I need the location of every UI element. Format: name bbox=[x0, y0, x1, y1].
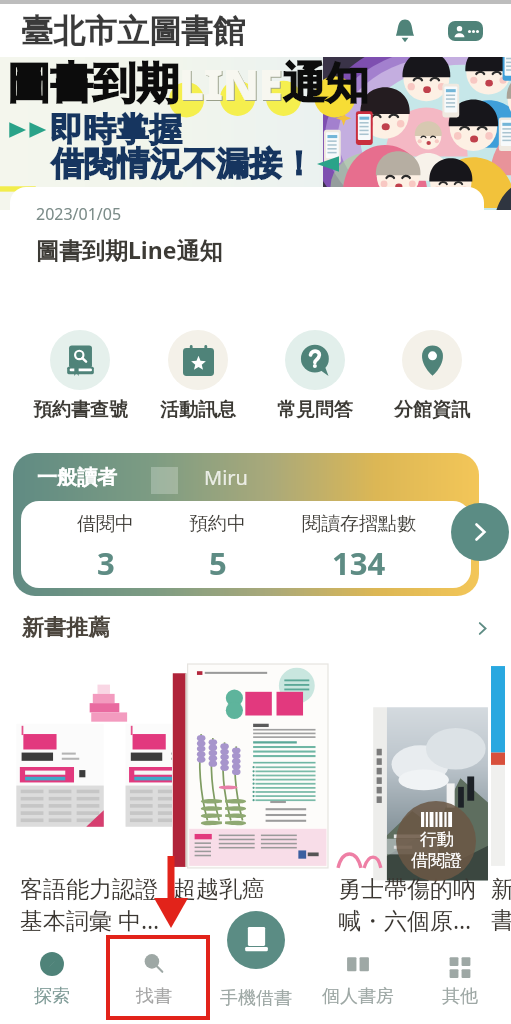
button[interactable]: 2023/01/05 bbox=[10, 187, 484, 309]
button[interactable]: 借閱中 bbox=[77, 507, 134, 588]
staticText: 臺北市立圖書館 bbox=[21, 11, 245, 51]
button[interactable]: 找書 bbox=[103, 951, 205, 1024]
staticText: 5 bbox=[209, 542, 227, 584]
staticText: 新書 bbox=[491, 875, 511, 935]
button[interactable]: 一般讀者 bbox=[13, 453, 479, 596]
staticText: 預約中 bbox=[189, 512, 246, 536]
button[interactable]: 個人書房 bbox=[307, 951, 409, 1024]
staticText: 個人書房 bbox=[322, 985, 394, 1008]
button[interactable]: 常見問答 bbox=[256, 330, 373, 422]
button[interactable]: 客語能力認證基本詞彙 中… bbox=[2, 664, 165, 936]
button[interactable]: 預約書查號 bbox=[21, 330, 139, 422]
staticText: 找書 bbox=[136, 985, 172, 1008]
button[interactable]: 閱讀存摺點數 bbox=[302, 507, 416, 588]
staticText: 2023/01/05 bbox=[36, 203, 122, 225]
staticText: LINE bbox=[180, 55, 284, 114]
button[interactable]: 預約中 bbox=[189, 507, 246, 588]
button[interactable]: 分館資訊 bbox=[373, 330, 490, 422]
staticText: 新書推薦 bbox=[22, 614, 110, 642]
staticText: 3 bbox=[97, 542, 115, 584]
staticText: 圖書到期 bbox=[7, 57, 179, 111]
button[interactable]: 新書 bbox=[491, 664, 511, 935]
staticText: 行動 bbox=[420, 829, 454, 850]
staticText: 閱讀存摺點數 bbox=[302, 512, 416, 536]
button[interactable]: 新書推薦 bbox=[22, 614, 491, 642]
staticText: 通知 bbox=[283, 57, 369, 111]
button[interactable]: 手機借書 bbox=[227, 911, 285, 969]
staticText: 借閱情況不漏接！ bbox=[51, 143, 315, 185]
button[interactable]: 其他 bbox=[409, 951, 511, 1024]
staticText: 超越乳癌 bbox=[173, 875, 265, 904]
staticText: 其他 bbox=[442, 985, 478, 1008]
button[interactable]: Notifications bbox=[386, 12, 424, 50]
staticText: Miru bbox=[204, 464, 248, 491]
staticText: 借閱中 bbox=[77, 512, 134, 536]
staticText: 客語能力認證基本詞彙 中… bbox=[20, 875, 163, 936]
button[interactable]: 探索 bbox=[0, 951, 103, 1024]
staticText: 圖書到期Line通知 bbox=[36, 234, 223, 265]
button[interactable]: 勇士帶傷的吶喊・六個原… bbox=[328, 664, 491, 936]
button[interactable]: More details bbox=[451, 503, 509, 561]
staticText: 預約書查號 bbox=[33, 398, 128, 422]
staticText: 一般讀者 bbox=[37, 465, 117, 490]
staticText: 借閱證 bbox=[411, 850, 462, 871]
staticText: 134 bbox=[332, 542, 386, 584]
button[interactable]: 行動 bbox=[396, 801, 476, 881]
staticText: 手機借書 bbox=[220, 987, 292, 1010]
staticText: 探索 bbox=[34, 985, 70, 1008]
staticText: 即時掌握 bbox=[50, 109, 182, 151]
staticText: 分館資訊 bbox=[394, 398, 470, 422]
staticText: 勇士帶傷的吶喊・六個原… bbox=[338, 875, 489, 936]
staticText: LINE bbox=[179, 54, 283, 113]
staticText: 常見問答 bbox=[277, 398, 353, 422]
button[interactable]: 活動訊息 bbox=[139, 330, 256, 422]
button[interactable]: Account menu bbox=[448, 21, 483, 41]
button[interactable]: 超越乳癌 bbox=[165, 664, 328, 904]
staticText: 活動訊息 bbox=[160, 398, 236, 422]
